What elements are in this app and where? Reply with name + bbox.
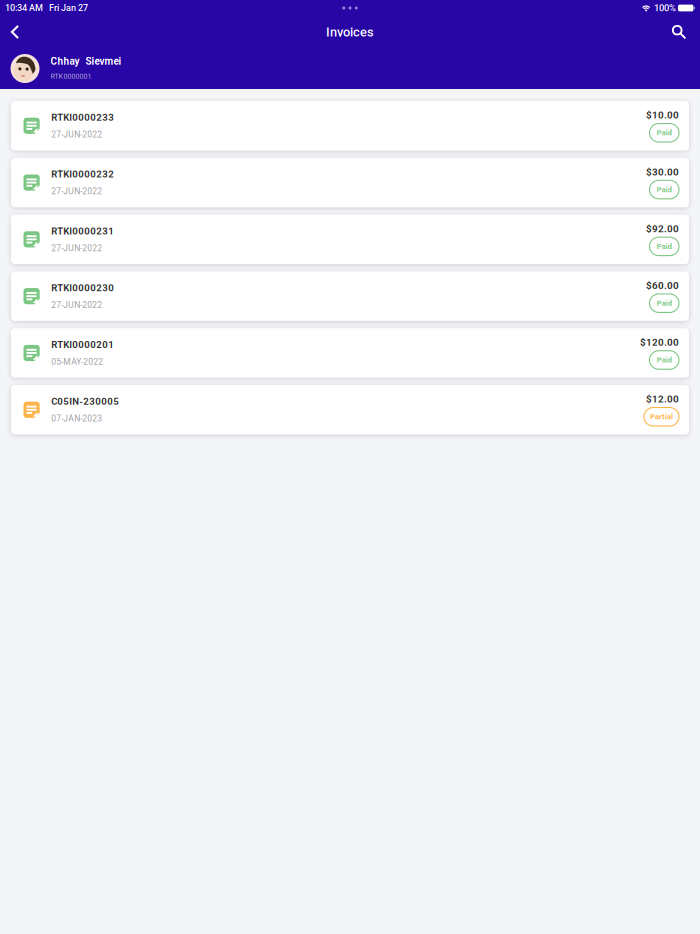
staticText: 27-JUN-2022 — [51, 130, 102, 140]
staticText: RTKI0000233 — [51, 112, 114, 123]
staticText: Paid — [657, 356, 672, 364]
staticText: 10:34 AM — [5, 3, 43, 13]
staticText: Invoices — [326, 24, 374, 39]
button[interactable]: RTKI0000233 — [11, 101, 689, 150]
staticText: Paid — [657, 242, 672, 251]
staticText: RTKI0000231 — [51, 225, 114, 237]
staticText: RTKI0000230 — [51, 282, 114, 294]
staticText: $120.00 — [640, 337, 679, 348]
staticText: 27-JUN-2022 — [51, 243, 102, 253]
staticText: Partial — [650, 412, 673, 421]
staticText: Fri Jan 27 — [49, 3, 88, 13]
staticText: $10.00 — [646, 109, 679, 121]
staticText: Paid — [657, 128, 672, 137]
staticText: 07-JAN-2023 — [51, 414, 102, 424]
button[interactable]: RTKI0000232 — [11, 158, 689, 207]
staticText: Paid — [657, 299, 672, 307]
staticText: 27-JUN-2022 — [51, 186, 102, 196]
button[interactable]: RTKI0000231 — [11, 215, 689, 264]
staticText: $92.00 — [646, 223, 679, 235]
staticText: 27-JUN-2022 — [51, 300, 102, 310]
staticText: C05IN-230005 — [51, 396, 119, 407]
staticText: RTK0000001 — [50, 72, 91, 80]
staticText: RTKI0000201 — [51, 339, 114, 350]
staticText: $30.00 — [646, 166, 679, 178]
button[interactable]: Chhay Sievmei — [0, 48, 700, 89]
staticText: RTKI0000232 — [51, 169, 114, 180]
button[interactable]: Back — [0, 16, 30, 48]
button[interactable]: Search — [664, 16, 694, 48]
staticText: $12.00 — [646, 393, 679, 405]
staticText: Paid — [657, 185, 672, 194]
staticText: $60.00 — [646, 280, 679, 291]
staticText: 100% — [654, 2, 676, 13]
button[interactable]: C05IN-230005 — [11, 385, 689, 434]
staticText: Chhay Sievmei — [50, 55, 121, 67]
staticText: 05-MAY-2022 — [51, 357, 103, 367]
button[interactable]: RTKI0000230 — [11, 271, 689, 321]
button[interactable]: RTKI0000201 — [11, 328, 689, 378]
